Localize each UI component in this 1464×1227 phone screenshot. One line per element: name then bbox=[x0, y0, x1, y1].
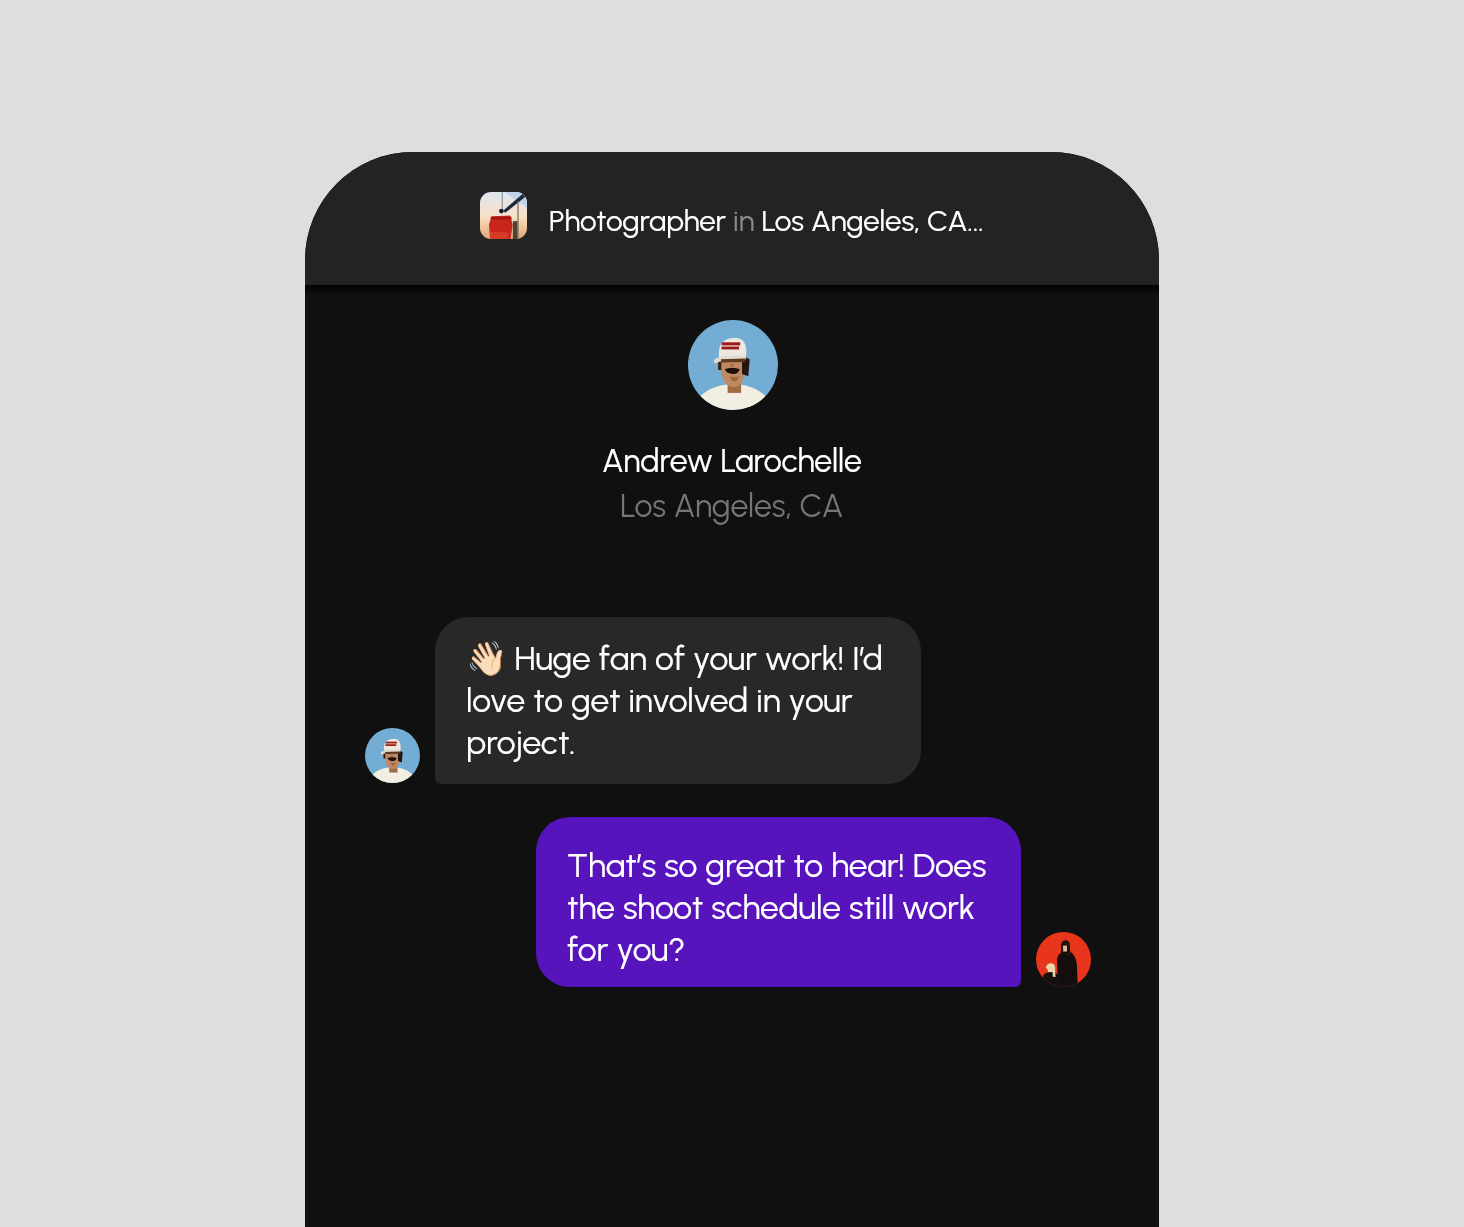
button[interactable]: Andrew Larochelle avatar bbox=[365, 728, 420, 783]
button[interactable]: 👋🏻 Huge fan of your work! I’d love to ge… bbox=[435, 617, 921, 784]
button[interactable]: Open job: Photographer in Los Angeles, C… bbox=[480, 192, 984, 239]
staticText: Andrew Larochelle bbox=[602, 440, 862, 480]
staticText: Photographer in Los Angeles, CA... bbox=[549, 198, 984, 240]
staticText: That’s so great to hear! Does the shoot … bbox=[567, 844, 1001, 970]
button[interactable]: Your avatar bbox=[1036, 932, 1091, 987]
button[interactable]: That’s so great to hear! Does the shoot … bbox=[536, 817, 1021, 987]
button[interactable]: Andrew Larochelle profile photo bbox=[688, 320, 778, 410]
staticText: Los Angeles, CA bbox=[620, 485, 844, 525]
staticText: 👋🏻 Huge fan of your work! I’d love to ge… bbox=[466, 637, 901, 763]
